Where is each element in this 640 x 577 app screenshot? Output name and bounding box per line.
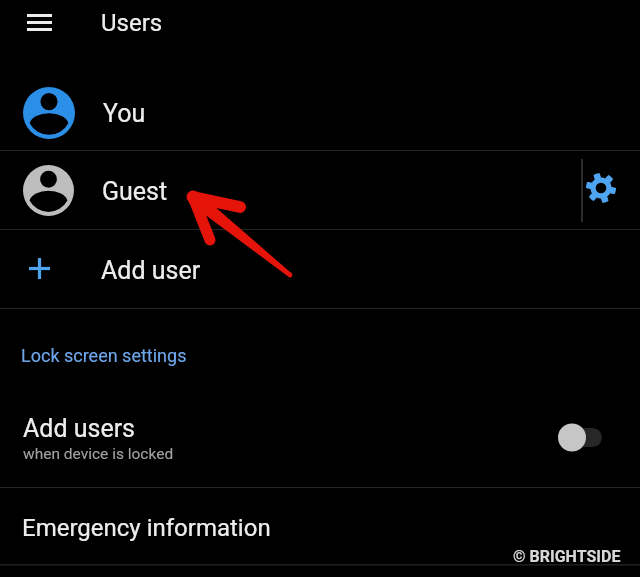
button[interactable]: Guest settings (583, 151, 640, 229)
button[interactable]: Add users (0, 391, 640, 487)
button[interactable]: Guest (0, 151, 581, 229)
staticText: You (103, 99, 146, 128)
staticText: Emergency information (22, 514, 271, 542)
staticText: Add users (23, 414, 136, 443)
button[interactable]: Open navigation menu (19, 2, 59, 42)
button[interactable]: Add users when device is locked (540, 415, 602, 463)
staticText: © BRIGHTSIDE (513, 547, 621, 566)
staticText: when device is locked (23, 445, 174, 463)
staticText: Lock screen settings (21, 345, 187, 366)
staticText: Add user (101, 256, 201, 285)
button[interactable]: Add user (0, 230, 640, 308)
staticText: Users (101, 9, 163, 37)
staticText: Guest (102, 177, 168, 206)
button[interactable]: You (0, 63, 640, 150)
button[interactable]: Emergency information (0, 488, 640, 577)
